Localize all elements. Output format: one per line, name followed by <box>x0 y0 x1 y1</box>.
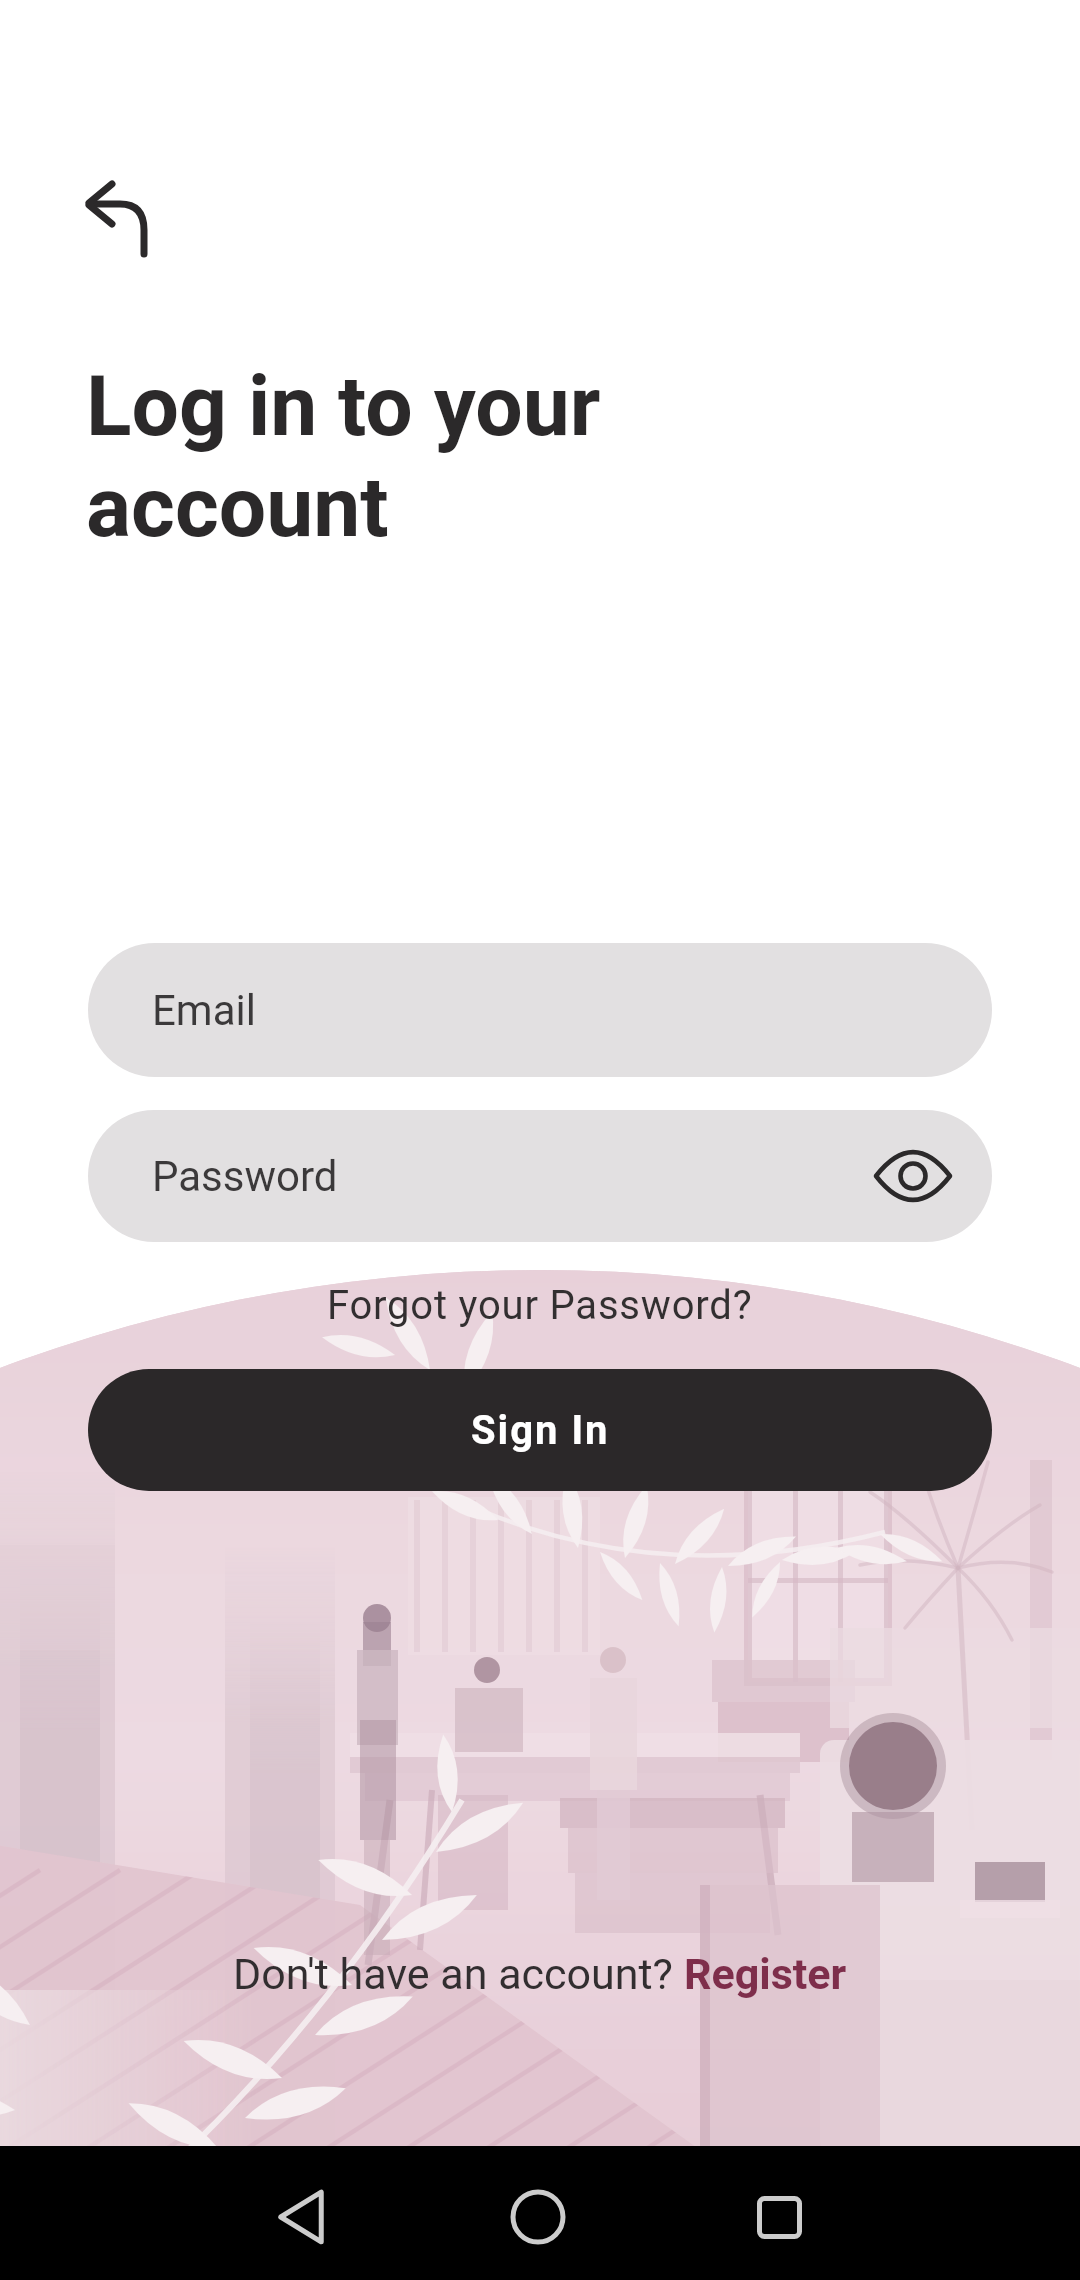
button[interactable] <box>62 160 172 270</box>
button[interactable] <box>739 2177 819 2257</box>
button[interactable]: Forgot your Password? <box>327 1282 753 1329</box>
staticText: Sign In <box>471 1407 610 1454</box>
staticText: Password <box>152 1152 338 1201</box>
staticText: Email <box>152 986 256 1035</box>
button[interactable]: Register <box>684 1949 847 1999</box>
button[interactable]: Sign In <box>88 1369 992 1491</box>
staticText: Don't have an account? <box>233 1949 684 1999</box>
staticText: Log in to your account <box>86 357 601 556</box>
button[interactable]: Password <box>88 1110 992 1242</box>
button[interactable] <box>498 2177 578 2257</box>
button[interactable]: Email <box>88 943 992 1077</box>
button[interactable] <box>261 2177 341 2257</box>
